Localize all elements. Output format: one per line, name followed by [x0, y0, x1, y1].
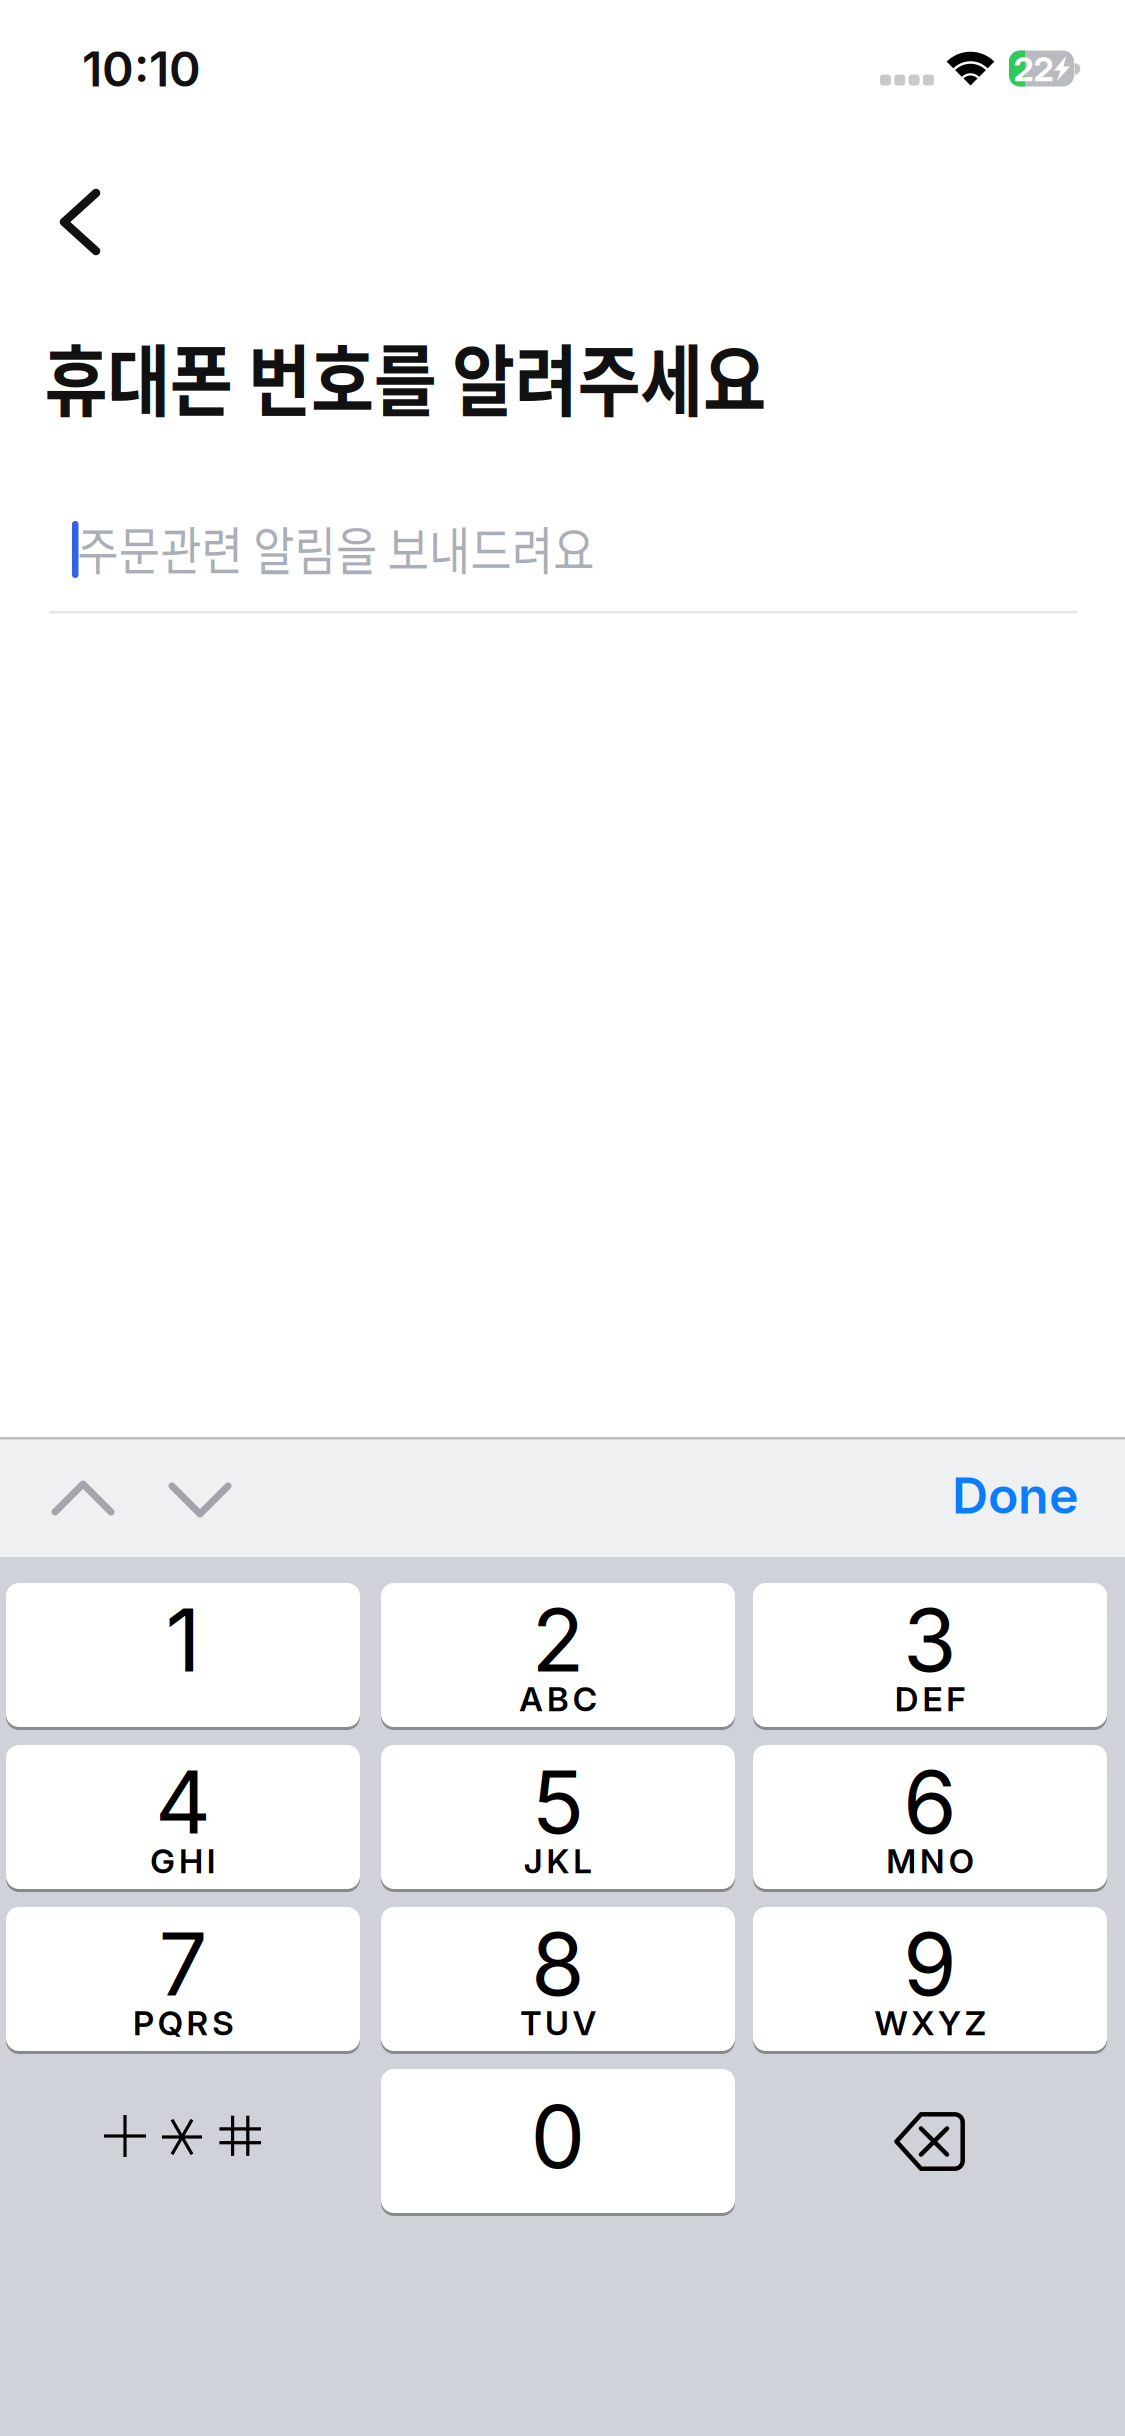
staticText: 5	[531, 1750, 584, 1854]
button[interactable]: 4	[6, 1745, 360, 1889]
staticText: DEF	[895, 1679, 965, 1719]
button[interactable]: Previous field	[33, 1448, 133, 1548]
staticText: MNO	[886, 1841, 974, 1881]
staticText: TUV	[520, 2003, 596, 2043]
button[interactable]: Done	[928, 1443, 1103, 1547]
button[interactable]: 6	[753, 1745, 1107, 1889]
staticText: 9	[903, 1912, 957, 2016]
button[interactable]: 8	[381, 1907, 735, 2051]
staticText: 0	[530, 2084, 585, 2189]
button[interactable]: 7	[6, 1907, 360, 2051]
button[interactable]: Symbols + * #	[6, 2069, 360, 2213]
staticText: WXYZ	[874, 2003, 986, 2043]
staticText: 6	[903, 1750, 957, 1854]
button[interactable]: Back	[30, 156, 162, 288]
button[interactable]: 1	[6, 1583, 360, 1727]
button[interactable]: 0	[381, 2069, 735, 2213]
button[interactable]: Next field	[150, 1448, 250, 1548]
staticText: JKL	[524, 1841, 592, 1881]
button[interactable]: 2	[381, 1583, 735, 1727]
staticText: 22	[1013, 49, 1053, 89]
staticText: 8	[531, 1912, 585, 2016]
button[interactable]: 5	[381, 1745, 735, 1889]
staticText: PQRS	[133, 2003, 233, 2043]
staticText: 휴대폰 번호를 알려주세요	[44, 319, 872, 433]
staticText: Done	[952, 1465, 1079, 1525]
button[interactable]: 9	[753, 1907, 1107, 2051]
staticText: 7	[158, 1912, 207, 2016]
staticText: 2	[531, 1588, 584, 1692]
staticText: ABC	[519, 1679, 597, 1719]
button[interactable]: 3	[753, 1583, 1107, 1727]
staticText: GHI	[150, 1841, 216, 1881]
button[interactable]: 휴대폰 번호 입력	[49, 505, 1077, 615]
staticText: 10:10	[82, 40, 201, 98]
staticText: 1	[165, 1588, 200, 1692]
staticText: 4	[155, 1750, 211, 1854]
staticText: 주문관련 알림을 보내드려요	[77, 510, 677, 585]
button[interactable]: Delete	[753, 2069, 1107, 2213]
staticText: 3	[903, 1588, 957, 1692]
